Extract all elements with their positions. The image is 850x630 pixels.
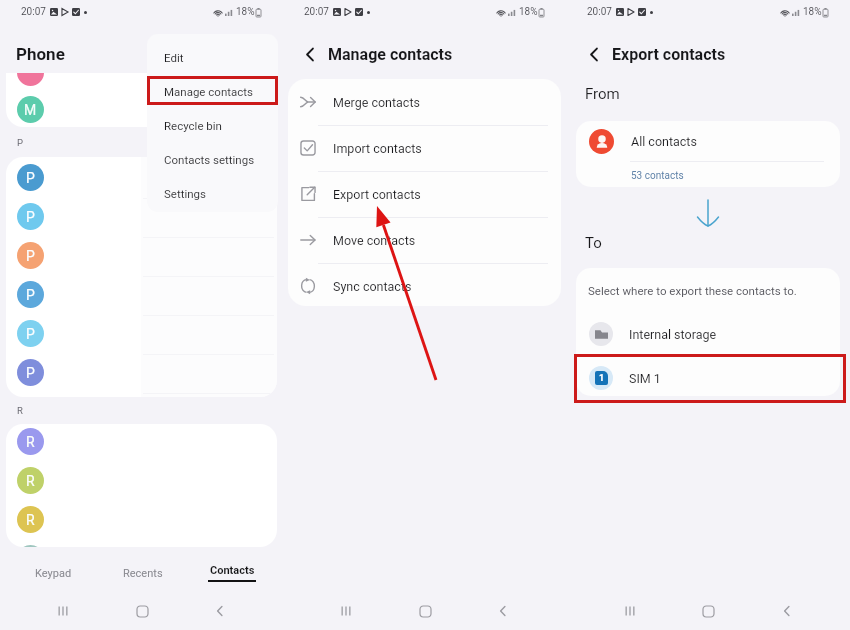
staticText: Export contacts [333,187,421,202]
staticText: R [17,405,23,416]
staticText: Select where to export these contacts to… [588,284,797,297]
button[interactable]: Contact P [6,275,277,314]
staticText: To [585,234,602,252]
staticText: 20:07 [21,6,46,18]
button[interactable]: Recents [48,596,78,626]
button[interactable]: Contacts settings [147,142,278,176]
staticText: Contacts settings [164,153,255,166]
button[interactable]: Recycle bin [147,108,278,142]
staticText: From [585,85,620,103]
button[interactable] [576,121,840,187]
staticText: P [26,170,35,186]
staticText: R [26,434,35,450]
staticText: Recents [123,567,163,580]
staticText: Move contacts [333,233,416,248]
button[interactable]: Contact P [6,197,277,236]
button[interactable]: Move contacts [288,217,561,263]
button[interactable]: Edit [147,40,278,74]
button[interactable]: Contact P [6,314,277,353]
staticText: P [26,365,35,381]
staticText: Edit [164,51,184,64]
button[interactable]: Contact R [6,424,277,461]
button[interactable]: Recents [331,596,361,626]
staticText: P [26,287,35,303]
staticText: Sync contacts [333,279,412,294]
button[interactable]: Back [205,596,235,626]
staticText: M [24,102,37,118]
staticText: 53 contacts [631,170,684,182]
staticText: 18% [519,6,538,18]
staticText: Keypad [35,567,72,580]
staticText: Merge contacts [333,95,420,110]
button[interactable]: Back [488,596,518,626]
staticText: 1 [599,373,605,384]
button[interactable]: Contact P [6,236,277,275]
staticText: R [26,473,35,489]
button[interactable]: Home [410,596,440,626]
button[interactable]: Keypad [9,557,98,589]
button[interactable]: Import contacts [288,125,561,171]
staticText: Contacts [210,564,255,577]
button[interactable]: Manage contacts [147,74,278,108]
staticText: 20:07 [587,6,612,18]
button[interactable]: Export contacts [288,171,561,217]
staticText: 18% [803,6,822,18]
staticText: P [26,248,35,264]
button[interactable]: Contact R [6,500,277,539]
staticText: P [26,326,35,342]
button[interactable]: Back [299,43,321,65]
button[interactable]: Merge contacts [288,79,561,125]
button[interactable]: Contact P [6,158,277,197]
staticText: 20:07 [304,6,329,18]
staticText: Manage contacts [164,85,253,98]
staticText: P [17,137,23,148]
button[interactable]: Home [693,596,723,626]
staticText: 18% [236,6,255,18]
staticText: Settings [164,187,206,200]
button[interactable]: Contact R [6,539,277,547]
staticText: Export contacts [612,45,726,64]
staticText: Internal storage [629,327,717,342]
button[interactable]: Sync contacts [288,263,561,309]
staticText: R [26,512,35,528]
button[interactable]: 1 [576,360,840,396]
button[interactable]: Contact P [6,353,277,392]
staticText: Import contacts [333,141,422,156]
button[interactable]: Contacts [187,557,276,589]
button[interactable]: Back [583,43,605,65]
button[interactable]: Recents [98,557,187,589]
staticText: Recycle bin [164,119,222,132]
button[interactable]: Back [772,596,802,626]
button[interactable]: Internal storage [576,316,840,352]
button[interactable]: Recents [615,596,645,626]
button[interactable]: Settings [147,176,278,210]
staticText: Phone [16,44,65,64]
button[interactable]: Contact R [6,461,277,500]
staticText: SIM 1 [629,371,661,386]
button[interactable]: Home [127,596,157,626]
staticText: All contacts [631,134,697,149]
staticText: Manage contacts [328,45,453,64]
staticText: P [26,209,35,225]
